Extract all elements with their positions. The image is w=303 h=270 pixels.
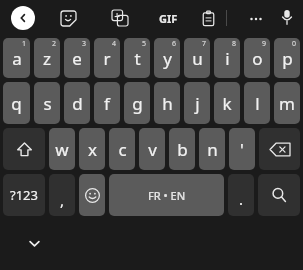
- button[interactable]: Hide keyboard: [23, 232, 45, 254]
- staticText: v: [148, 138, 157, 161]
- button[interactable]: w: [49, 128, 75, 170]
- button[interactable]: g: [124, 82, 150, 124]
- button[interactable]: o: [244, 38, 270, 78]
- staticText: c: [118, 138, 127, 161]
- staticText: x: [88, 138, 97, 161]
- staticText: n: [207, 138, 218, 161]
- staticText: o: [252, 47, 263, 70]
- staticText: 5: [142, 39, 147, 49]
- button[interactable]: q: [3, 82, 30, 124]
- staticText: l: [255, 92, 260, 115]
- button[interactable]: i: [214, 38, 240, 78]
- button[interactable]: c: [109, 128, 135, 170]
- button[interactable]: Voice input: [277, 7, 297, 27]
- staticText: f: [104, 92, 110, 115]
- button[interactable]: r: [94, 38, 120, 78]
- staticText: r: [103, 47, 111, 70]
- button[interactable]: FR • EN: [109, 174, 224, 216]
- button[interactable]: Stickers: [58, 8, 78, 28]
- button[interactable]: m: [274, 82, 300, 124]
- staticText: t: [134, 47, 141, 70]
- button[interactable]: u: [184, 38, 210, 78]
- button[interactable]: h: [154, 82, 180, 124]
- staticText: 7: [202, 39, 207, 49]
- staticText: k: [222, 92, 232, 115]
- staticText: GIF: [159, 11, 178, 26]
- staticText: u: [192, 47, 203, 70]
- staticText: 6: [172, 39, 177, 49]
- button[interactable]: y: [154, 38, 180, 78]
- staticText: e: [72, 47, 82, 70]
- staticText: 3: [82, 39, 87, 49]
- staticText: ?123: [10, 186, 38, 204]
- button[interactable]: GIF: [155, 8, 181, 28]
- button[interactable]: .: [228, 174, 254, 216]
- staticText: 1: [22, 39, 27, 49]
- staticText: h: [162, 92, 173, 115]
- staticText: w: [55, 138, 69, 161]
- staticText: ,: [60, 190, 65, 210]
- button[interactable]: x: [79, 128, 105, 170]
- button[interactable]: ': [229, 128, 255, 170]
- button[interactable]: a: [3, 38, 30, 78]
- staticText: z: [43, 47, 51, 70]
- button[interactable]: t: [124, 38, 150, 78]
- staticText: FR • EN: [148, 188, 186, 203]
- staticText: m: [279, 92, 295, 115]
- button[interactable]: f: [94, 82, 120, 124]
- button[interactable]: Backspace: [259, 128, 300, 170]
- staticText: i: [225, 47, 230, 70]
- button[interactable]: Emoji: [79, 174, 105, 216]
- staticText: 9: [262, 39, 267, 49]
- button[interactable]: s: [34, 82, 60, 124]
- button[interactable]: p: [274, 38, 300, 78]
- button[interactable]: Back: [11, 6, 35, 30]
- staticText: 0: [292, 39, 297, 49]
- button[interactable]: z: [34, 38, 60, 78]
- staticText: ': [240, 138, 244, 161]
- button[interactable]: Clipboard: [198, 8, 218, 28]
- button[interactable]: v: [139, 128, 165, 170]
- button[interactable]: ?123: [3, 174, 45, 216]
- staticText: a: [12, 47, 22, 70]
- staticText: p: [282, 47, 293, 70]
- button[interactable]: More options: [245, 8, 267, 30]
- button[interactable]: l: [244, 82, 270, 124]
- button[interactable]: Search: [258, 174, 300, 216]
- button[interactable]: Translate: [110, 8, 130, 28]
- button[interactable]: n: [199, 128, 225, 170]
- staticText: s: [43, 92, 52, 115]
- button[interactable]: k: [214, 82, 240, 124]
- staticText: 8: [232, 39, 237, 49]
- staticText: y: [163, 47, 172, 70]
- staticText: 4: [112, 39, 117, 49]
- button[interactable]: b: [169, 128, 195, 170]
- button[interactable]: ,: [49, 174, 75, 216]
- staticText: 2: [52, 39, 57, 49]
- button[interactable]: d: [64, 82, 90, 124]
- staticText: j: [195, 92, 200, 115]
- button[interactable]: Shift: [3, 128, 45, 170]
- button[interactable]: e: [64, 38, 90, 78]
- staticText: q: [11, 92, 22, 115]
- staticText: .: [239, 189, 244, 209]
- staticText: d: [72, 92, 83, 115]
- button[interactable]: j: [184, 82, 210, 124]
- staticText: g: [132, 92, 143, 115]
- staticText: b: [177, 138, 188, 161]
